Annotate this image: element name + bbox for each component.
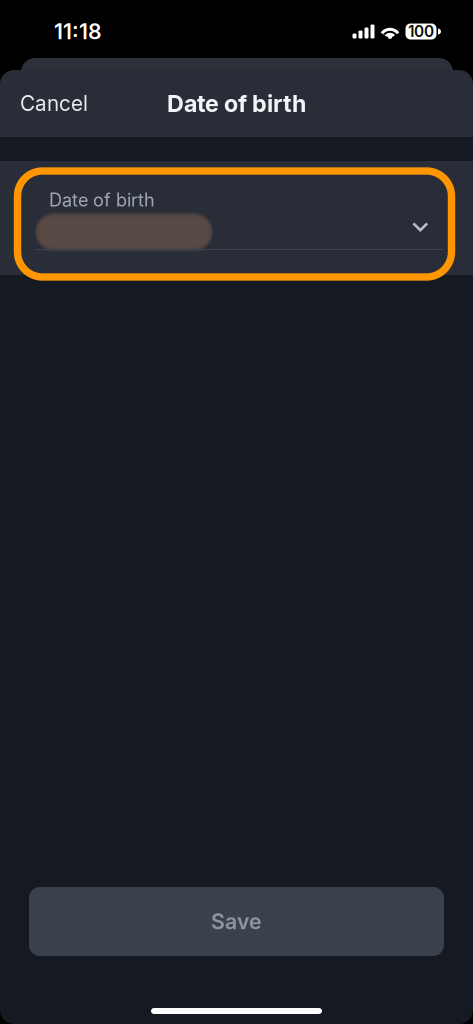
button[interactable]: Save [0,887,473,956]
staticText: Date of birth [49,189,155,211]
button[interactable]: Date of birth [0,161,473,275]
staticText: 11:18 [54,19,102,44]
staticText: Cancel [20,91,88,116]
button[interactable]: Cancel [0,77,108,130]
staticText: Save [211,909,262,934]
staticText: 100 [408,22,434,41]
staticText: Date of birth [167,89,306,118]
